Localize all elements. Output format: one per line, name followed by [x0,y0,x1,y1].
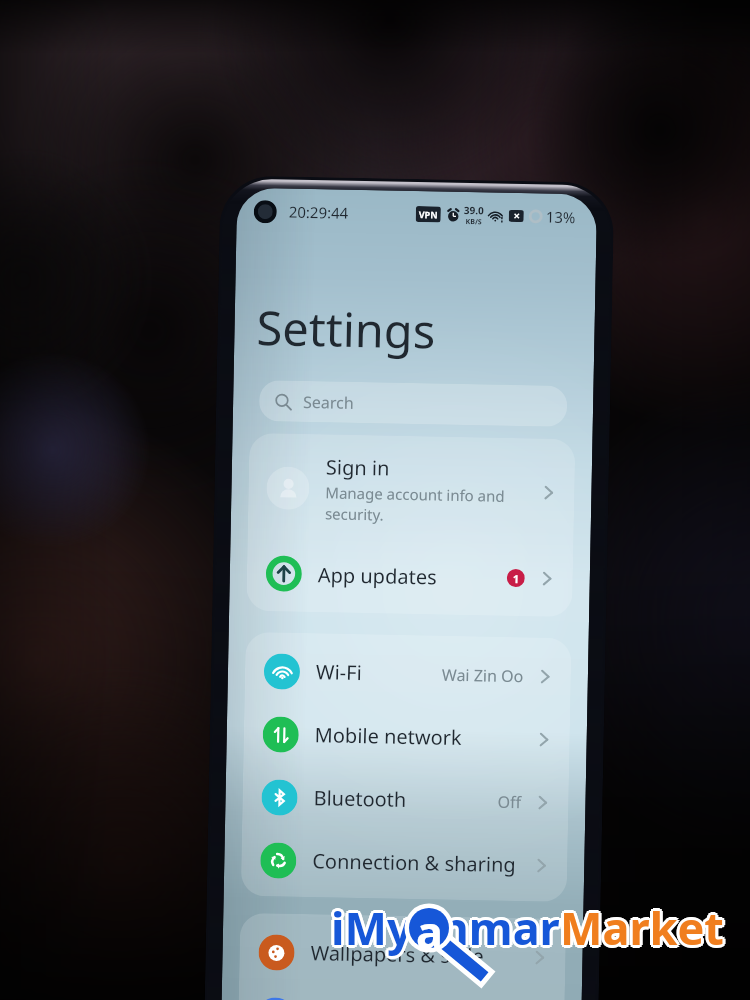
staticText: 13% [546,207,576,227]
button[interactable]: Bluetooth [242,765,569,834]
button[interactable]: Display & brightness [238,983,565,1000]
staticText: Mobile network [314,721,462,751]
staticText: Market [557,897,721,958]
staticText: Wai Zin Oo [442,664,524,687]
staticText: Market [563,897,727,958]
staticText: 1 [513,571,520,586]
button[interactable]: Mobile network [243,702,570,771]
staticText: iMyanmar [333,899,562,960]
staticText: Off [497,791,522,813]
staticText: Market [558,899,722,960]
staticText: iMyanmar [329,895,558,956]
staticText: Market [560,894,724,955]
staticText: KB/S [465,217,483,227]
staticText: iMyanmar [331,894,560,955]
staticText: Market [560,897,724,958]
staticText: iMyanmar [334,897,563,958]
staticText: iMyanmar [331,897,560,958]
button[interactable]: Sign in [247,433,575,547]
staticText: iMyanmar [328,897,557,958]
staticText: App updates [318,561,437,590]
button[interactable]: Wallpapers & style [239,920,566,989]
button[interactable]: App updates [246,541,573,611]
staticText: Manage account info and security. [325,482,506,528]
staticText: Market [562,899,726,960]
staticText: a [416,901,443,962]
staticText: iMyanmar [331,900,560,961]
staticText: Wallpapers & style [310,939,485,969]
staticText: 20:29:44 [289,202,349,223]
staticText: Connection & sharing [312,847,517,878]
button[interactable]: Wi-Fi [244,639,571,708]
staticText: Bluetooth [313,784,407,813]
button[interactable]: Connection & sharing [241,828,568,897]
staticText: Sign in [326,453,390,482]
staticText: Market [562,895,726,956]
staticText: VPN [419,208,438,220]
staticText: Settings [256,295,436,362]
staticText: Wi-Fi [316,658,362,686]
staticText: Market [558,895,722,956]
staticText: 39.0 [464,203,484,217]
staticText: Search [303,391,354,414]
staticText: Market [560,900,724,961]
staticText: iMyanmar [333,895,562,956]
button[interactable]: Search [259,380,567,427]
staticText: iMyanmar [329,899,558,960]
